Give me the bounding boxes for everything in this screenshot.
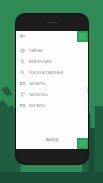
staticText: ПОИСК НАГРАЖДЕНИЙ xyxy=(29,71,63,75)
staticText: КОНТАКТЫ xyxy=(29,104,45,108)
button[interactable]: КОНТАКТЫ xyxy=(16,100,88,111)
button[interactable]: Back xyxy=(18,31,27,40)
staticText: ЧАТ БОНУСЫ xyxy=(29,93,48,97)
button[interactable]: МОЙ ПРОФИЛЬ xyxy=(16,56,88,67)
staticText: ВЫХОД xyxy=(46,138,58,142)
button[interactable]: Menu action xyxy=(77,31,88,42)
button[interactable]: ЧАТ КАРТЫ xyxy=(16,78,88,89)
button[interactable]: ГЛАВНАЯ xyxy=(16,45,88,56)
staticText: МОЙ ПРОФИЛЬ xyxy=(29,60,52,64)
button[interactable]: ЧАТ БОНУСЫ xyxy=(16,89,88,100)
button[interactable]: ПОИСК НАГРАЖДЕНИЙ xyxy=(16,67,88,78)
button[interactable]: ВЫХОД xyxy=(16,133,88,147)
staticText: ГЛАВНАЯ xyxy=(29,49,43,53)
button[interactable]: Primary action xyxy=(77,138,88,149)
staticText: ЧАТ КАРТЫ xyxy=(29,82,45,86)
